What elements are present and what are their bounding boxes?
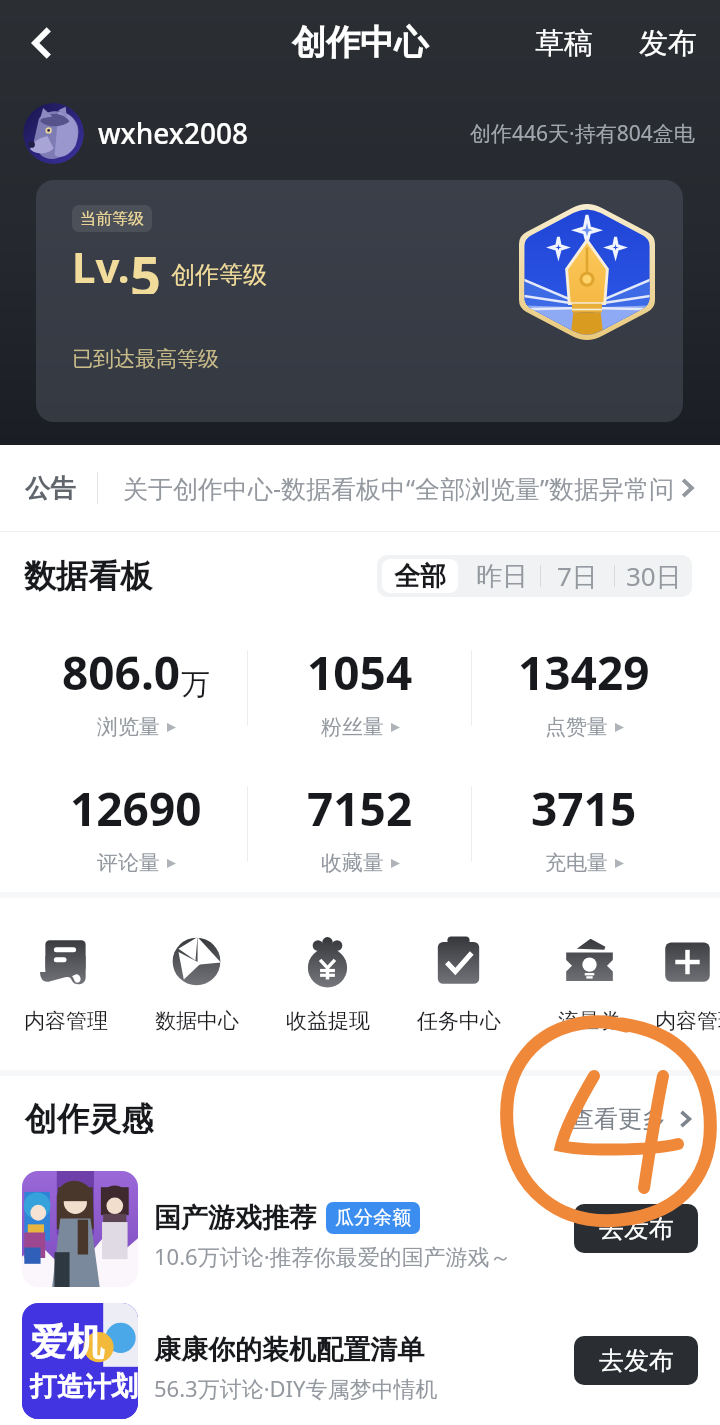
button[interactable]: 12690: [24, 756, 248, 892]
button[interactable]: 去发布: [574, 1204, 698, 1253]
button[interactable]: 13429: [472, 620, 696, 756]
staticText: 国产游戏推荐: [154, 1201, 316, 1235]
button[interactable]: 7152: [248, 756, 472, 892]
button[interactable]: 流量券: [524, 898, 655, 1070]
staticText: 3715: [531, 777, 637, 840]
button[interactable]: 内容管理: [655, 898, 720, 1070]
button[interactable]: 当前等级: [36, 180, 683, 422]
staticText: 当前等级: [80, 209, 144, 229]
staticText: 去发布: [599, 1213, 674, 1244]
staticText: 创作灵感: [25, 1099, 153, 1139]
staticText: 数据看板: [24, 556, 152, 596]
staticText: 5: [130, 238, 161, 294]
staticText: 内容管理: [24, 1008, 108, 1034]
button[interactable]: 收益提现: [262, 898, 393, 1070]
staticText: 7日: [557, 558, 598, 594]
staticText: 7152: [307, 777, 413, 840]
button[interactable]: 发布: [629, 13, 707, 74]
button[interactable]: 昨日: [463, 555, 540, 597]
button[interactable]: 3715: [472, 756, 696, 892]
staticText: 万: [181, 666, 210, 703]
staticText: 打造计划: [30, 1370, 138, 1404]
button[interactable]: 任务中心: [393, 898, 524, 1070]
staticText: 查看更多: [570, 1104, 666, 1134]
staticText: 全部: [394, 560, 446, 593]
staticText: 点赞量: [545, 714, 608, 740]
staticText: 康康你的装机配置清单: [154, 1333, 424, 1367]
staticText: 昨日: [476, 560, 528, 593]
staticText: 创作中心: [292, 21, 428, 64]
button[interactable]: 数据中心: [131, 898, 262, 1070]
staticText: 12690: [70, 777, 202, 840]
staticText: 收藏量: [321, 850, 384, 876]
staticText: 关于创作中心-数据看板中“全部浏览量”数据异常问: [123, 471, 675, 505]
staticText: 流量券: [558, 1008, 621, 1034]
button[interactable]: 内容管理: [0, 898, 131, 1070]
staticText: 发布: [639, 25, 697, 62]
button[interactable]: 爱机: [0, 1296, 720, 1425]
button[interactable]: 公告: [0, 445, 720, 531]
button[interactable]: 7日: [541, 555, 614, 597]
staticText: 创作446天·持有804盒电: [470, 119, 695, 148]
staticText: wxhex2008: [98, 114, 249, 152]
staticText: 粉丝量: [321, 714, 384, 740]
staticText: 爱机: [30, 1319, 104, 1366]
button[interactable]: 国产游戏推荐: [0, 1161, 720, 1296]
staticText: 去发布: [599, 1345, 674, 1376]
staticText: 任务中心: [417, 1008, 501, 1034]
staticText: 已到达最高等级: [72, 346, 219, 372]
button[interactable]: 草稿: [525, 13, 603, 74]
staticText: Lv.: [72, 238, 130, 292]
button[interactable]: 1054: [248, 620, 472, 756]
staticText: 1054: [307, 641, 413, 704]
button[interactable]: 30日: [615, 555, 692, 597]
staticText: 806.0: [62, 641, 181, 704]
staticText: 10.6万讨论·推荐你最爱的国产游戏～: [154, 1241, 512, 1271]
staticText: 内容管理: [655, 1008, 720, 1034]
staticText: 公告: [25, 473, 75, 504]
staticText: 草稿: [535, 25, 593, 62]
staticText: 评论量: [97, 850, 160, 876]
staticText: 13429: [518, 641, 650, 704]
button[interactable]: 去发布: [574, 1336, 698, 1385]
button[interactable]: wxhex2008: [0, 100, 720, 166]
staticText: 数据中心: [155, 1008, 239, 1034]
staticText: 56.3万讨论·DIY专属梦中情机: [154, 1373, 438, 1403]
staticText: 创作等级: [171, 260, 267, 290]
staticText: 浏览量: [97, 714, 160, 740]
button[interactable]: 806.0: [24, 620, 248, 756]
button[interactable]: Back: [8, 9, 76, 77]
staticText: 充电量: [545, 850, 608, 876]
staticText: 30日: [626, 558, 682, 594]
button[interactable]: 查看更多: [560, 1096, 706, 1142]
staticText: 瓜分余额: [335, 1206, 411, 1230]
button[interactable]: 全部: [382, 559, 458, 593]
staticText: 收益提现: [286, 1008, 370, 1034]
